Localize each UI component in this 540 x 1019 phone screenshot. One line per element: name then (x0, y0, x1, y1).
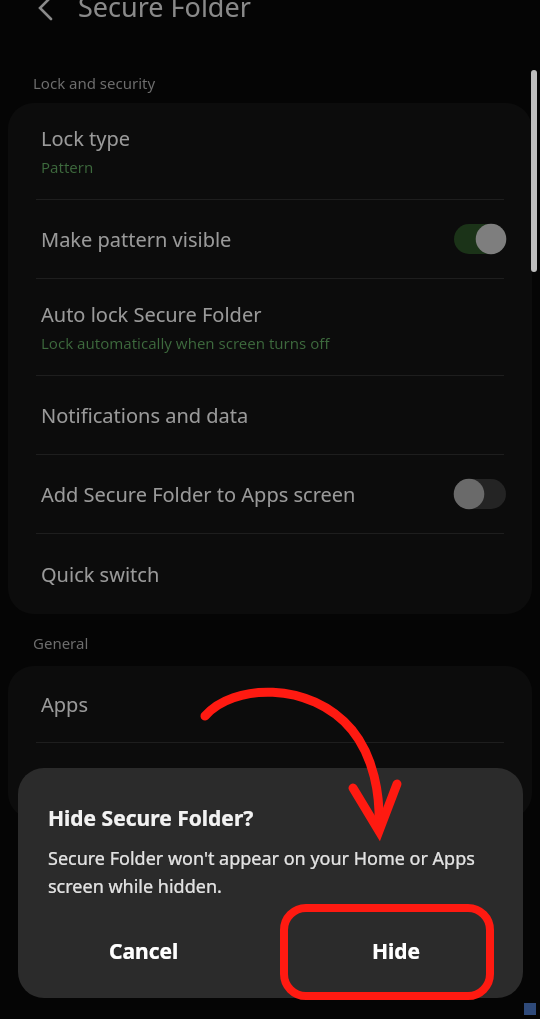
staticText: General (33, 633, 89, 653)
staticText: Notifications and data (41, 402, 249, 429)
button[interactable]: Back (24, 0, 68, 28)
staticText: Secure Folder (78, 0, 251, 25)
staticText: Make pattern visible (41, 226, 232, 253)
staticText: Auto lock Secure Folder (41, 301, 262, 328)
staticText: Pattern (41, 157, 94, 177)
button[interactable]: Add Secure Folder to Apps screen (8, 455, 532, 533)
staticText: Apps (41, 691, 88, 718)
staticText: Lock automatically when screen turns off (41, 333, 330, 353)
staticText: Hide Secure Folder? (48, 804, 254, 833)
button[interactable]: Accounts (8, 743, 532, 819)
button[interactable]: Quick switch (8, 534, 532, 614)
button[interactable]: Apps (8, 666, 532, 742)
button[interactable]: Notifications and data (8, 376, 532, 454)
button[interactable]: Cancel (18, 916, 270, 986)
staticText: Lock and security (33, 73, 156, 93)
staticText: Secure Folder won't appear on your Home … (48, 846, 488, 898)
button[interactable]: Auto lock Secure Folder (8, 279, 532, 375)
staticText: Cancel (109, 937, 179, 966)
staticText: Add Secure Folder to Apps screen (41, 481, 356, 508)
staticText: Lock type (41, 125, 131, 152)
button[interactable]: Make pattern visible (8, 200, 532, 278)
button[interactable]: Hide (270, 916, 523, 986)
staticText: Quick switch (41, 561, 160, 588)
button[interactable]: Lock type (8, 103, 532, 199)
staticText: Hide (372, 937, 421, 966)
